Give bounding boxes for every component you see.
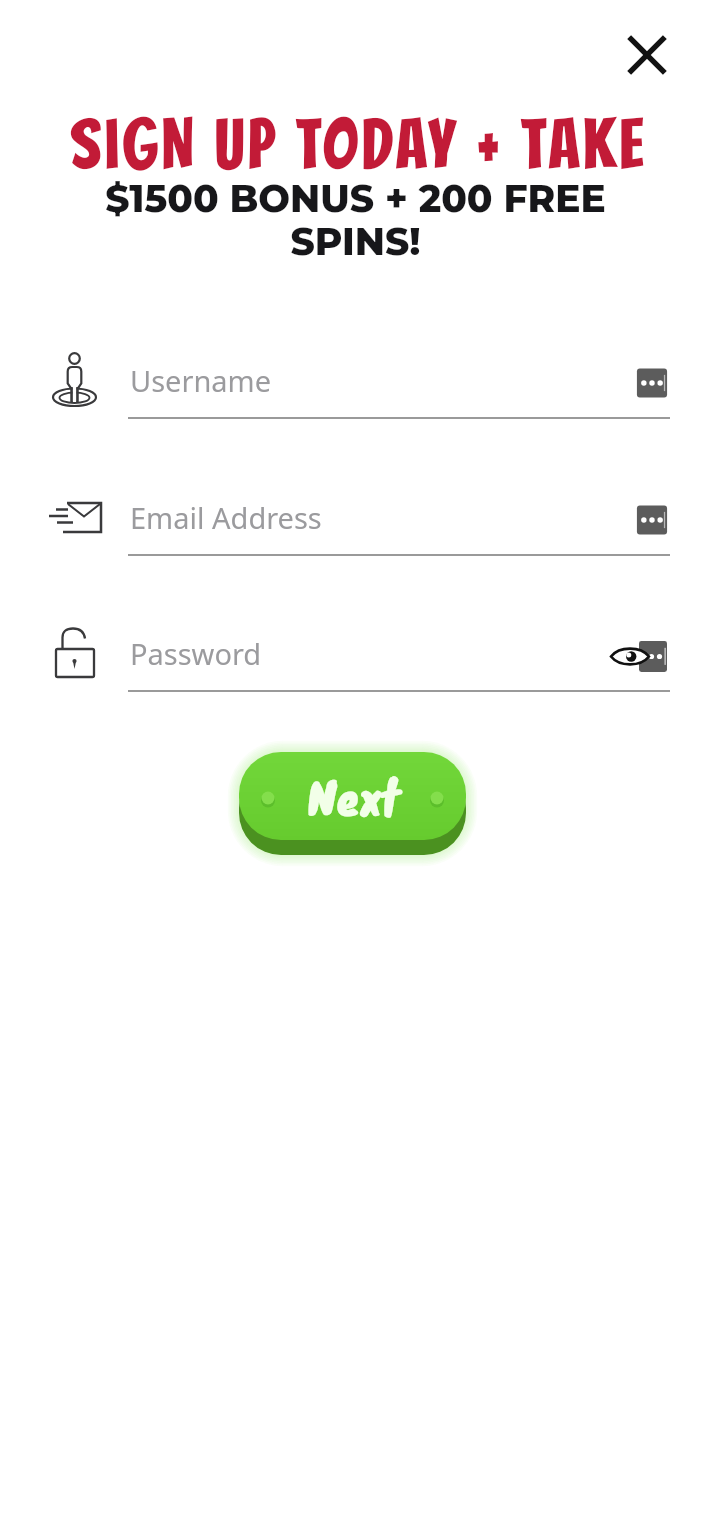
button[interactable]: Password [0,618,711,704]
staticText: Email Address [130,498,322,537]
button[interactable]: Email Address [0,482,711,568]
button[interactable]: More options [623,491,681,549]
staticText: Password [130,634,262,673]
button[interactable]: Show password [612,632,670,690]
staticText: $1500 BONUS + 200 FREE SPINS! [50,176,661,265]
button[interactable]: More options [623,354,681,412]
button[interactable] [239,752,466,855]
staticText: Username [130,361,272,400]
button[interactable]: Username [0,345,711,431]
button[interactable]: Close [612,20,682,90]
